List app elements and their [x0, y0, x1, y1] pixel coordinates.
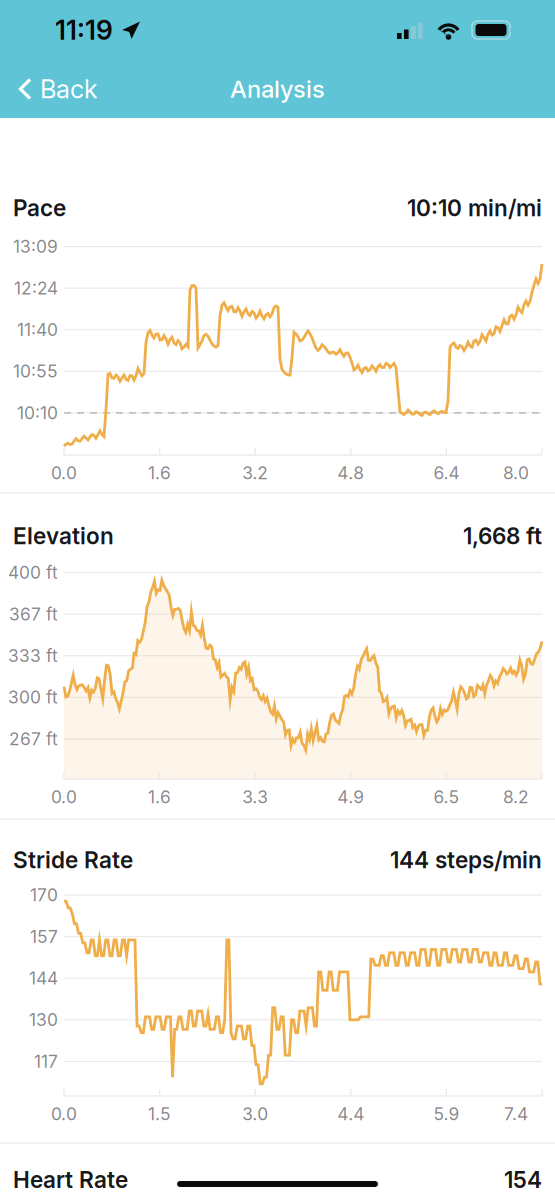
staticText: Back: [40, 74, 98, 104]
staticText: 8.2: [503, 786, 529, 807]
staticText: 0.0: [51, 786, 77, 807]
staticText: 13:09: [13, 236, 58, 257]
staticText: 400 ft: [8, 562, 58, 583]
staticText: Elevation: [13, 522, 114, 550]
staticText: 170: [30, 884, 58, 905]
staticText: 154: [504, 1166, 542, 1193]
staticText: 6.5: [433, 786, 459, 807]
staticText: 11:19: [55, 14, 113, 46]
staticText: 1,668 ft: [463, 522, 542, 550]
staticText: 10:10: [17, 402, 58, 423]
staticText: 1.5: [148, 1103, 171, 1124]
staticText: 3.3: [242, 786, 268, 807]
staticText: 3.2: [242, 462, 268, 483]
staticText: Heart Rate: [13, 1166, 128, 1193]
staticText: 8.0: [503, 462, 529, 483]
staticText: 367 ft: [9, 604, 58, 625]
staticText: 144: [29, 968, 58, 989]
staticText: 0.0: [51, 462, 77, 483]
staticText: 10:55: [13, 361, 58, 382]
staticText: 5.9: [433, 1103, 459, 1124]
staticText: 300 ft: [8, 687, 58, 708]
staticText: 4.8: [337, 462, 364, 483]
staticText: 144 steps/min: [390, 846, 542, 874]
staticText: Pace: [13, 194, 66, 222]
staticText: 1.6: [148, 786, 171, 807]
staticText: 12:24: [14, 278, 58, 299]
staticText: Stride Rate: [13, 846, 133, 874]
staticText: 4.9: [337, 786, 364, 807]
staticText: 117: [34, 1051, 58, 1072]
staticText: 7.4: [504, 1103, 528, 1124]
staticText: 4.4: [337, 1103, 364, 1124]
staticText: 1.6: [148, 462, 171, 483]
staticText: 0.0: [51, 1103, 77, 1124]
staticText: 333 ft: [8, 645, 58, 666]
staticText: 267 ft: [9, 728, 58, 749]
staticText: 130: [29, 1009, 58, 1030]
staticText: 157: [30, 926, 58, 947]
staticText: Analysis: [230, 74, 325, 103]
staticText: 10:10 min/mi: [407, 194, 542, 222]
staticText: 3.0: [242, 1103, 268, 1124]
staticText: 11:40: [17, 319, 58, 340]
staticText: 6.4: [433, 462, 459, 483]
button[interactable]: Back: [0, 64, 110, 114]
